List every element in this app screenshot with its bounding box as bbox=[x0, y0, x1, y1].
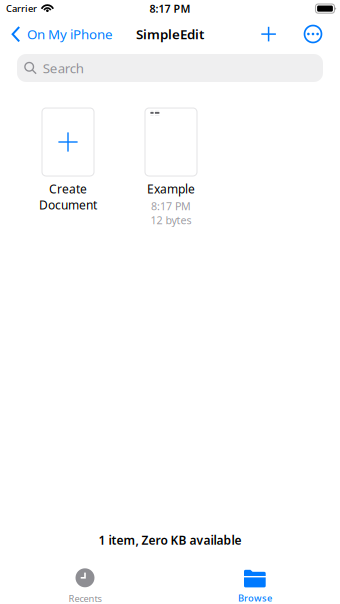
staticText: Carrier bbox=[6, 2, 37, 15]
staticText: 8:17 PM bbox=[149, 1, 190, 16]
staticText: Recents bbox=[68, 592, 101, 604]
staticText: On My iPhone bbox=[27, 25, 113, 43]
button[interactable]: Browse bbox=[170, 562, 340, 604]
button[interactable]: On My iPhone bbox=[0, 20, 121, 48]
button[interactable]: Recents bbox=[0, 562, 170, 604]
button[interactable]: Search bbox=[17, 54, 323, 82]
staticText: Browse bbox=[238, 592, 272, 604]
staticText: 8:17 PM bbox=[151, 199, 191, 213]
button[interactable]: Create bbox=[20, 108, 116, 213]
staticText: Example bbox=[147, 181, 195, 197]
staticText: Search bbox=[43, 59, 84, 77]
staticText: 1 item, Zero KB available bbox=[98, 532, 241, 548]
staticText: 12 bytes bbox=[150, 213, 191, 227]
button[interactable]: More options bbox=[295, 20, 340, 48]
staticText: SimpleEdit bbox=[136, 25, 204, 43]
button[interactable]: New Document bbox=[249, 20, 295, 48]
staticText: Create bbox=[49, 181, 87, 197]
button[interactable]: Example bbox=[123, 108, 219, 227]
staticText: Document bbox=[39, 197, 97, 213]
